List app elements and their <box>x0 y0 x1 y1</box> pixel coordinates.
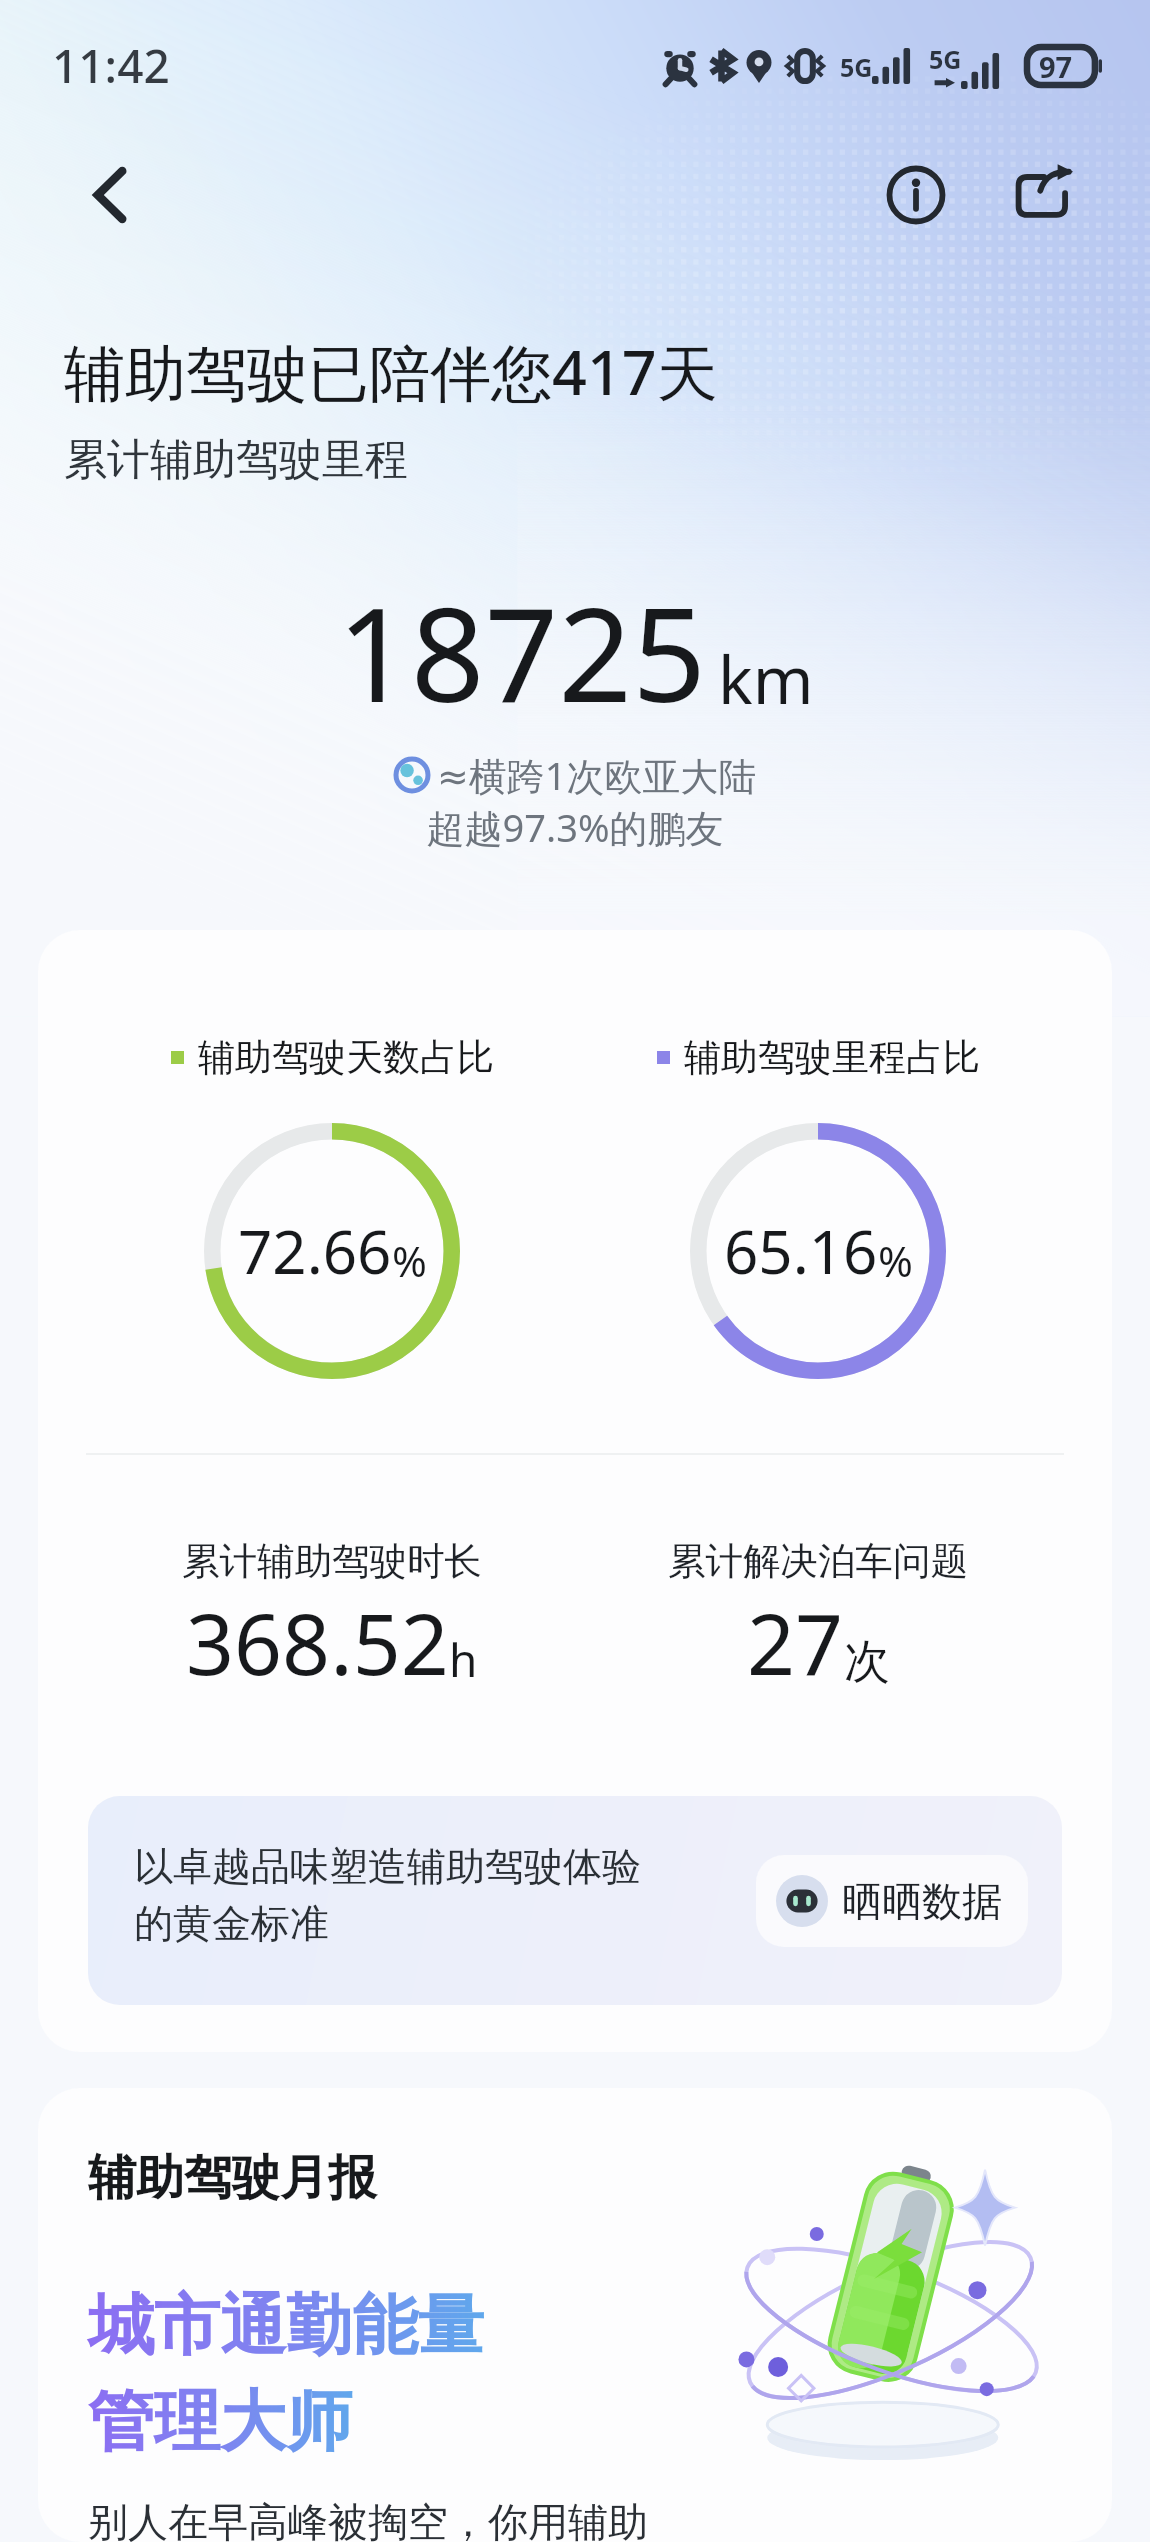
staticText: 累计解决泊车问题 <box>668 1538 968 1585</box>
staticText: 城市通勤能量 <box>88 2284 484 2367</box>
staticText: 72.66 <box>238 1210 392 1292</box>
staticText: h <box>449 1628 478 1691</box>
staticText: 晒晒数据 <box>842 1876 1002 1926</box>
staticText: 辅助驾驶天数占比 <box>198 1034 494 1081</box>
staticText: 累计辅助驾驶里程 <box>64 433 408 487</box>
staticText: 辅助驾驶月报 <box>88 2148 376 2208</box>
staticText: 5G <box>929 42 962 76</box>
button[interactable]: 晒晒数据 <box>756 1855 1028 1947</box>
button[interactable]: Back <box>70 155 150 235</box>
staticText: 累计辅助驾驶时长 <box>182 1538 482 1585</box>
staticText: 别人在早高峰被掏空，你用辅助 <box>88 2497 648 2542</box>
button[interactable]: Share <box>1002 153 1086 237</box>
staticText: ≈横跨1次欧亚大陆 <box>437 749 757 801</box>
staticText: 11:42 <box>52 34 170 97</box>
staticText: km <box>718 635 814 724</box>
staticText: 次 <box>844 1633 890 1691</box>
staticText: 97 <box>1039 47 1073 86</box>
staticText: % <box>878 1232 913 1289</box>
staticText: 18725 <box>337 564 706 740</box>
staticText: 辅助驾驶里程占比 <box>684 1034 980 1081</box>
staticText: 65.16 <box>724 1210 878 1292</box>
staticText: 5G <box>840 50 873 84</box>
staticText: 的黄金标准 <box>134 1899 329 1948</box>
staticText: 368.52 <box>186 1585 449 1699</box>
button[interactable]: Info <box>874 153 958 237</box>
staticText: 辅助驾驶已陪伴您417天 <box>64 330 718 413</box>
staticText: % <box>392 1232 427 1289</box>
staticText: 以卓越品味塑造辅助驾驶体验 <box>134 1842 641 1891</box>
staticText: 27 <box>747 1585 844 1699</box>
staticText: 超越97.3%的鹏友 <box>0 801 1150 853</box>
staticText: 管理大师 <box>88 2380 352 2463</box>
